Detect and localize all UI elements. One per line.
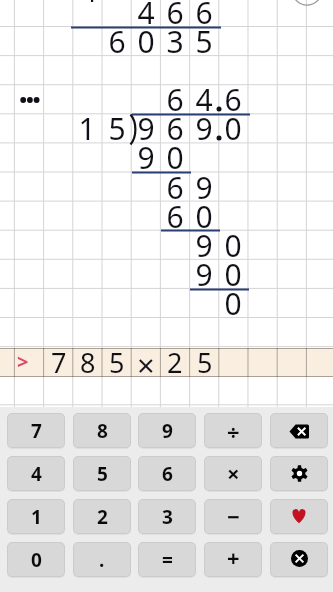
button[interactable]: Favorites xyxy=(270,499,328,534)
staticText: 7 xyxy=(31,418,42,444)
button[interactable]: 5 xyxy=(73,456,131,491)
staticText: 0 xyxy=(195,196,213,236)
staticText: 8 xyxy=(97,418,108,444)
staticText: 6 xyxy=(166,108,184,148)
staticText: ÷ xyxy=(227,416,240,446)
staticText: 6 xyxy=(166,79,184,119)
staticText: 8 xyxy=(80,344,96,373)
button[interactable]: 9 xyxy=(138,413,196,448)
button[interactable]: 0 xyxy=(7,542,65,577)
staticText: × xyxy=(227,458,240,488)
staticText: 2 xyxy=(167,344,183,373)
staticText: 0 xyxy=(224,283,242,323)
staticText: 4 xyxy=(31,461,42,487)
button[interactable]: . xyxy=(73,542,131,577)
staticText: = xyxy=(162,547,173,573)
staticText: 3 xyxy=(166,21,184,61)
staticText: × xyxy=(137,344,155,373)
staticText: 0 xyxy=(224,254,242,294)
button[interactable]: 6 xyxy=(138,456,196,491)
staticText: 0 xyxy=(166,137,184,177)
staticText: 9 xyxy=(195,254,213,294)
staticText: 9 xyxy=(195,167,213,207)
staticText: 9 xyxy=(137,108,155,148)
staticText: 9 xyxy=(162,418,173,444)
staticText: − xyxy=(227,501,240,531)
button[interactable]: 1 xyxy=(7,499,65,534)
staticText: 9 xyxy=(137,137,155,177)
button[interactable]: 2 xyxy=(73,499,131,534)
staticText: . xyxy=(99,547,105,573)
button[interactable]: Clear xyxy=(270,542,328,577)
staticText: 6 xyxy=(166,167,184,207)
staticText: 6 xyxy=(166,196,184,236)
staticText: 6 xyxy=(108,21,126,61)
button[interactable]: − xyxy=(204,499,262,534)
staticText: 6 xyxy=(195,0,213,32)
staticText: 7 xyxy=(51,344,67,373)
button[interactable]: 3 xyxy=(138,499,196,534)
staticText: 5 xyxy=(195,21,213,61)
button[interactable]: + xyxy=(204,542,262,577)
button[interactable]: Backspace xyxy=(270,413,328,448)
staticText: 5 xyxy=(97,461,108,487)
staticText: 9 xyxy=(195,108,213,148)
staticText: 6 xyxy=(162,461,173,487)
button[interactable]: ÷ xyxy=(204,413,262,448)
button[interactable]: 8 xyxy=(73,413,131,448)
staticText: 0 xyxy=(31,547,42,573)
staticText: 4 xyxy=(195,79,213,119)
staticText: 0 xyxy=(224,108,242,148)
staticText: 3 xyxy=(162,504,173,530)
staticText: 5 xyxy=(108,108,126,148)
staticText: 5 xyxy=(197,344,213,373)
staticText: > xyxy=(17,348,29,375)
staticText: 5 xyxy=(109,344,125,373)
staticText: 1 xyxy=(78,108,96,148)
button[interactable]: Settings xyxy=(270,456,328,491)
staticText: 4 xyxy=(137,0,155,32)
button[interactable]: 4 xyxy=(7,456,65,491)
button[interactable]: = xyxy=(138,542,196,577)
staticText: 1 xyxy=(84,0,99,9)
staticText: 0 xyxy=(137,21,155,61)
staticText: 6 xyxy=(166,0,184,32)
button[interactable]: × xyxy=(204,456,262,491)
staticText: 0 xyxy=(224,225,242,265)
button[interactable]: > xyxy=(0,348,333,377)
staticText: 2 xyxy=(97,504,108,530)
staticText: 6 xyxy=(224,79,242,119)
button[interactable]: 7 xyxy=(7,413,65,448)
staticText: 9 xyxy=(195,225,213,265)
staticText: 1 xyxy=(31,504,42,530)
staticText: + xyxy=(227,542,240,572)
